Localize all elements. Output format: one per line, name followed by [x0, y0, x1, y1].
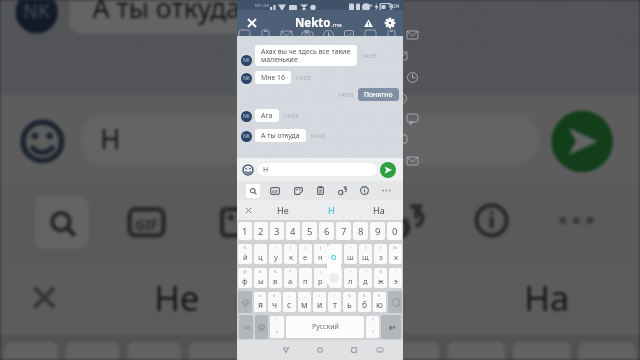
button[interactable]: 3 — [127, 342, 181, 360]
button[interactable]: { — [359, 244, 372, 264]
button[interactable]: Н — [258, 163, 377, 176]
button[interactable]: 5 — [251, 342, 308, 360]
button[interactable]: + — [314, 268, 327, 288]
button[interactable]: Report user — [358, 13, 378, 33]
button[interactable]: Мне 16 — [255, 71, 291, 84]
button[interactable]: Не — [85, 257, 270, 334]
button[interactable]: ] — [314, 244, 327, 264]
button[interactable]: 2 — [254, 222, 268, 240]
button[interactable]: [ — [299, 244, 312, 264]
button[interactable]: 0 — [387, 222, 402, 240]
button[interactable]: Send message — [380, 162, 396, 178]
button[interactable]: - — [283, 292, 296, 312]
button[interactable]: 1 — [238, 222, 252, 240]
button[interactable]: Translate — [370, 184, 439, 257]
button[interactable]: } — [374, 244, 387, 264]
button[interactable]: @ — [238, 268, 252, 288]
button[interactable]: 7 — [336, 222, 351, 240]
button[interactable]: % — [238, 244, 252, 264]
button[interactable]: 4 — [189, 342, 243, 360]
button[interactable]: Ахах вы че здесь все такие маленькие — [255, 45, 357, 66]
button[interactable]: 7 — [382, 342, 439, 360]
button[interactable]: Ага — [255, 109, 279, 122]
button[interactable]: Clipboard — [311, 181, 329, 200]
button[interactable]: Stickers — [289, 181, 307, 200]
button[interactable]: А ты откуда — [255, 129, 306, 142]
button[interactable]: € — [373, 292, 386, 312]
button[interactable]: More options — [377, 181, 395, 200]
button[interactable]: Expand suggestions — [237, 200, 259, 220]
button[interactable]: ) — [344, 268, 357, 288]
button[interactable]: Delete — [388, 291, 402, 313]
button[interactable]: Ъ — [343, 292, 356, 312]
button[interactable]: GIF — [112, 184, 181, 257]
button[interactable]: 6 — [319, 222, 334, 240]
button[interactable]: 5 — [302, 222, 317, 240]
button[interactable]: 1 — [4, 342, 58, 360]
button[interactable]: ~ — [269, 244, 282, 264]
button[interactable]: Shift — [238, 291, 252, 313]
button[interactable]: Send message — [551, 111, 613, 172]
button[interactable]: Search — [244, 181, 262, 200]
button[interactable]: | — [284, 244, 297, 264]
button[interactable]: Emoji — [12, 111, 73, 172]
button[interactable]: Русский — [286, 316, 364, 338]
button[interactable]: Settings — [379, 12, 401, 34]
button[interactable]: Emoji — [240, 162, 256, 178]
button[interactable]: 9 — [370, 222, 385, 240]
button[interactable]: Н — [270, 257, 455, 334]
button[interactable]: На — [355, 200, 403, 220]
button[interactable]: ( — [329, 268, 342, 288]
button[interactable]: " — [389, 268, 402, 288]
button[interactable]: Н — [307, 200, 355, 220]
button[interactable]: Back — [279, 340, 293, 360]
button[interactable]: Close chat — [240, 11, 264, 35]
button[interactable]: GIF — [266, 181, 284, 200]
button[interactable]: < — [329, 244, 342, 264]
button[interactable]: Понятно — [358, 88, 399, 101]
button[interactable]: 6 — [316, 342, 374, 360]
button[interactable]: Не — [259, 200, 307, 220]
button[interactable]: - — [299, 268, 312, 288]
button[interactable]: Avatar — [15, 0, 58, 33]
button[interactable]: № — [389, 244, 402, 264]
button[interactable]: Avatar — [241, 131, 252, 142]
button[interactable]: Avatar — [241, 111, 252, 122]
button[interactable]: ъ — [254, 292, 266, 312]
button[interactable]: Enter — [381, 315, 401, 339]
button[interactable]: 0 — [578, 342, 636, 360]
button[interactable]: Translate — [333, 181, 351, 200]
button[interactable]: Stickers — [200, 184, 270, 257]
button[interactable]: _ — [298, 292, 311, 312]
button[interactable]: # — [254, 268, 267, 288]
button[interactable]: = — [313, 292, 326, 312]
button[interactable]: Info — [355, 181, 373, 200]
button[interactable]: 4 — [286, 222, 300, 240]
button[interactable]: Avatar — [241, 55, 252, 66]
button[interactable]: Emoji — [255, 315, 268, 339]
button[interactable]: Search — [27, 184, 96, 257]
button[interactable]: & — [269, 268, 282, 288]
button[interactable]: 3 — [270, 222, 284, 240]
button[interactable]: % — [374, 268, 387, 288]
button[interactable]: 8 — [447, 342, 505, 360]
button[interactable]: 9 — [513, 342, 571, 360]
button[interactable]: Clipboard — [285, 184, 355, 257]
button[interactable]: $ — [358, 292, 371, 312]
button[interactable]: 8 — [353, 222, 368, 240]
button[interactable]: ё — [268, 292, 281, 312]
button[interactable]: ' — [254, 244, 267, 264]
button[interactable]: ? — [366, 316, 379, 338]
button[interactable]: More options — [540, 184, 609, 257]
button[interactable]: Recent apps — [347, 340, 361, 360]
button[interactable]: А ты откуда — [69, 0, 266, 33]
button[interactable]: Expand suggestions — [0, 257, 85, 334]
button[interactable]: Numbers — [239, 315, 253, 339]
button[interactable]: Avatar — [241, 73, 252, 84]
button[interactable]: 2 — [65, 342, 119, 360]
button[interactable]: Hide keyboard — [373, 340, 387, 360]
button[interactable]: На — [455, 257, 640, 334]
button[interactable]: / — [359, 268, 372, 288]
button[interactable]: Info — [455, 184, 524, 257]
button[interactable]: ; — [328, 292, 341, 312]
